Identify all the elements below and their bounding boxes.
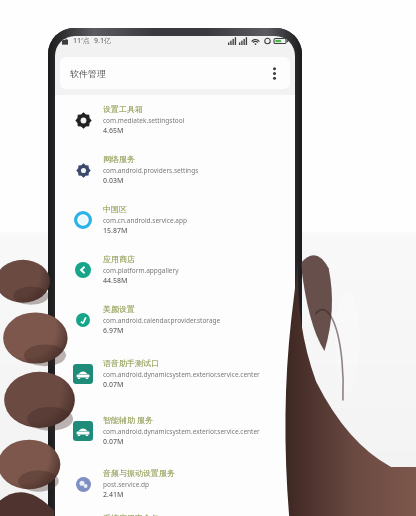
staticText: 0.07M xyxy=(103,437,124,447)
staticText: 0.03M xyxy=(103,176,124,186)
staticText: 应用商店 xyxy=(103,254,135,264)
staticText: 系统应用安全包 xyxy=(103,513,159,516)
staticText: post.service.dp xyxy=(103,480,150,489)
button[interactable]: 设置工具箱 xyxy=(55,95,295,145)
staticText: 9.1亿 xyxy=(94,36,111,46)
staticText: com.platform.appgallery xyxy=(103,266,179,275)
button[interactable]: 中国区 xyxy=(55,195,295,245)
staticText: 智能辅助 服务 xyxy=(103,414,154,425)
staticText: 44.58M xyxy=(103,276,128,286)
button[interactable]: 语音助手测试口 xyxy=(55,345,295,402)
staticText: 语音助手测试口 xyxy=(103,358,159,368)
staticText: com.android.providers.settings xyxy=(103,166,199,175)
staticText: 音频与振动设置服务 xyxy=(103,468,175,478)
button[interactable]: 网络服务 xyxy=(55,145,295,195)
button[interactable]: 应用商店 xyxy=(55,245,295,295)
staticText: 2.41M xyxy=(103,490,124,500)
staticText: 6.97M xyxy=(103,326,124,336)
staticText: com.cn.android.service.app xyxy=(103,216,187,225)
staticText: com.android.dynamicsystem.exterior.servi… xyxy=(103,370,260,379)
staticText: 0.07M xyxy=(103,380,124,390)
staticText: 4.65M xyxy=(103,126,124,136)
staticText: 网络服务 xyxy=(103,154,135,164)
staticText: com.mediatek.settingstool xyxy=(103,116,185,125)
button[interactable]: 系统应用安全包 xyxy=(55,509,295,516)
staticText: 15.87M xyxy=(103,226,128,236)
button[interactable]: 音频与振动设置服务 xyxy=(55,459,295,509)
staticText: 软件管理 xyxy=(70,68,106,79)
button[interactable]: 美颜设置 xyxy=(55,295,295,345)
staticText: com.android.dynamicsystem.exterior.servi… xyxy=(103,427,260,436)
staticText: com.android.calendar.provider.storage xyxy=(103,316,221,325)
staticText: 美颜设置 xyxy=(103,304,135,314)
button[interactable]: More options xyxy=(265,64,283,82)
staticText: 中国区 xyxy=(103,204,127,214)
button[interactable]: 软件管理 xyxy=(60,57,290,89)
button[interactable]: 智能辅助 服务 xyxy=(55,402,295,459)
staticText: 11′点 xyxy=(73,36,90,46)
staticText: 设置工具箱 xyxy=(103,104,143,114)
